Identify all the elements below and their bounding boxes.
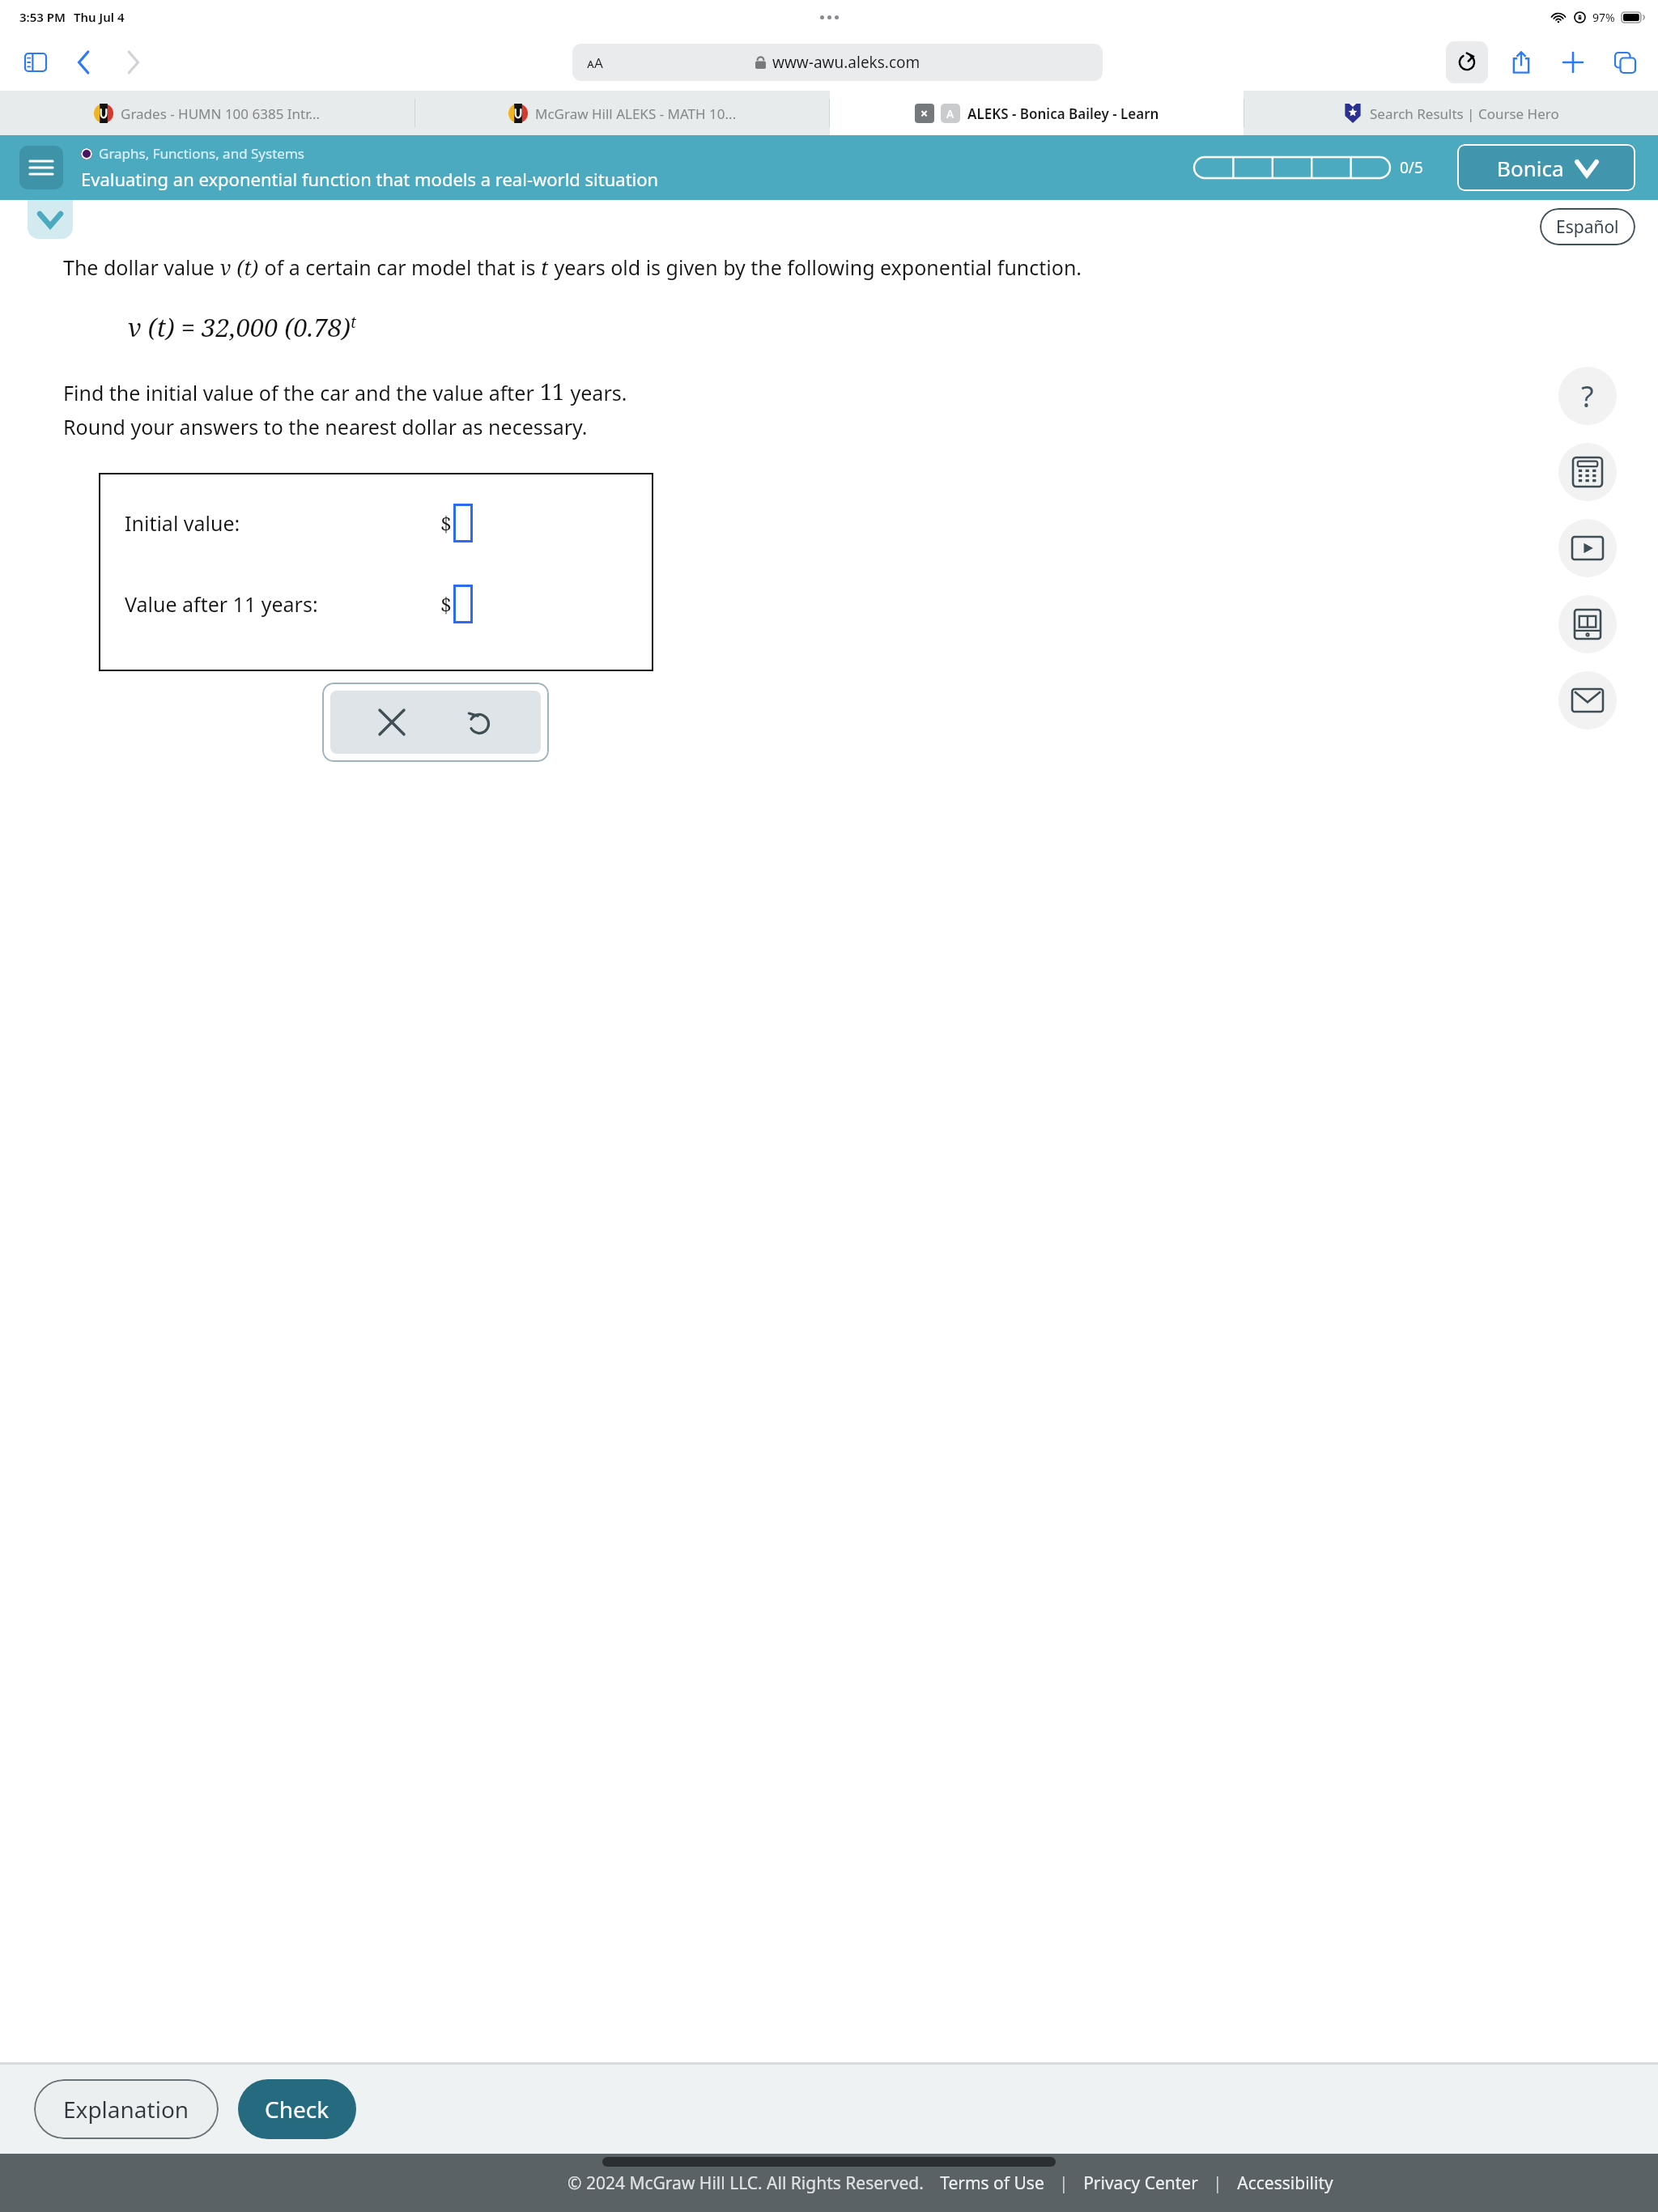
- button[interactable]: New tab: [1554, 44, 1592, 81]
- button[interactable]: [453, 504, 473, 542]
- button[interactable]: Video: [1558, 519, 1617, 577]
- staticText: ?: [1581, 376, 1594, 416]
- staticText: www-awu.aleks.com: [772, 52, 920, 73]
- staticText: Explanation: [63, 2094, 189, 2125]
- staticText: 3:53 PM: [19, 9, 66, 25]
- button[interactable]: Search Results | Course Hero: [1244, 91, 1658, 135]
- staticText: |: [1213, 2172, 1222, 2195]
- staticText: Privacy Center: [1083, 2172, 1198, 2195]
- staticText: years.: [565, 379, 627, 406]
- button[interactable]: Show sidebar: [18, 45, 53, 80]
- button[interactable]: Tabs: [1606, 44, 1643, 81]
- button[interactable]: Share: [1503, 44, 1540, 81]
- button[interactable]: Bonica: [1457, 144, 1635, 191]
- button[interactable]: Message: [1558, 671, 1617, 730]
- staticText: Graphs, Functions, and Systems: [99, 144, 304, 163]
- button[interactable]: Clear: [366, 696, 418, 748]
- staticText: Accessibility: [1237, 2172, 1333, 2195]
- staticText: 11: [540, 376, 565, 406]
- staticText: Initial value:: [125, 509, 240, 537]
- staticText: of a certain car model that is: [259, 253, 541, 281]
- button[interactable]: Collapse: [28, 200, 73, 239]
- button[interactable]: eBook: [1558, 595, 1617, 653]
- button[interactable]: ×: [830, 91, 1243, 135]
- staticText: |: [1059, 2172, 1069, 2195]
- staticText: Value after 11 years:: [125, 590, 318, 618]
- button[interactable]: Help: [1558, 367, 1617, 425]
- button[interactable]: Menu: [19, 146, 63, 189]
- button[interactable]: Grades - HUMN 100 6385 Intr...: [0, 91, 414, 135]
- staticText: © 2024 McGraw Hill LLC. All Rights Reser…: [568, 2172, 924, 2195]
- staticText: t: [541, 253, 549, 281]
- button[interactable]: Español: [1556, 208, 1619, 245]
- button[interactable]: Undo: [453, 696, 505, 748]
- staticText: Find the initial value of the car and th…: [63, 379, 540, 406]
- staticText: ×: [920, 104, 929, 122]
- staticText: Thu Jul 4: [74, 9, 125, 25]
- button[interactable]: Terms of Use: [940, 2172, 1044, 2195]
- staticText: McGraw Hill ALEKS - MATH 10...: [535, 104, 737, 123]
- staticText: Round your answers to the nearest dollar…: [63, 413, 588, 440]
- button[interactable]: Calculator: [1558, 443, 1617, 501]
- staticText: (t): [232, 253, 259, 281]
- staticText: Grades - HUMN 100 6385 Intr...: [121, 104, 321, 123]
- staticText: Evaluating an exponential function that …: [81, 167, 659, 191]
- button[interactable]: ᴀA: [572, 44, 1103, 81]
- staticText: Search Results | Course Hero: [1370, 104, 1559, 123]
- staticText: $: [440, 509, 452, 537]
- staticText: t: [351, 312, 356, 333]
- button[interactable]: Accessibility: [1237, 2172, 1333, 2195]
- button[interactable]: Check: [238, 2079, 356, 2139]
- staticText: A: [946, 106, 954, 121]
- button[interactable]: Forward: [115, 45, 151, 80]
- staticText: v: [220, 253, 232, 281]
- button[interactable]: [453, 585, 473, 623]
- staticText: v (t) = 32,000 (0.78): [128, 310, 351, 344]
- button[interactable]: Explanation: [34, 2079, 219, 2139]
- button[interactable]: Reload: [1446, 41, 1488, 83]
- staticText: ALEKS - Bonica Bailey - Learn: [967, 104, 1159, 123]
- button[interactable]: McGraw Hill ALEKS - MATH 10...: [415, 91, 829, 135]
- staticText: 0/5: [1400, 157, 1423, 178]
- staticText: $: [440, 590, 452, 618]
- staticText: Bonica: [1497, 154, 1564, 182]
- staticText: Español: [1556, 215, 1619, 239]
- button[interactable]: Back: [66, 45, 102, 80]
- staticText: Check: [265, 2094, 329, 2125]
- staticText: 97%: [1592, 10, 1615, 25]
- staticText: Terms of Use: [940, 2172, 1044, 2195]
- staticText: The dollar value: [63, 253, 220, 281]
- button[interactable]: Privacy Center: [1083, 2172, 1198, 2195]
- staticText: ᴀA: [587, 53, 603, 72]
- staticText: years old is given by the following expo…: [549, 253, 1082, 281]
